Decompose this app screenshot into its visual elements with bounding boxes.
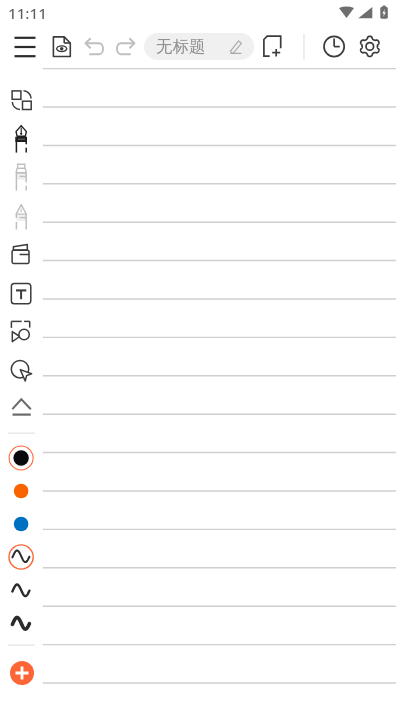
button[interactable]: Colour bbox=[5, 442, 37, 474]
button[interactable]: Settings bbox=[354, 30, 386, 62]
button[interactable]: Stroke width bbox=[5, 541, 37, 573]
button[interactable]: Marker bbox=[5, 161, 37, 193]
button[interactable]: Stroke width bbox=[5, 575, 37, 607]
button[interactable]: Lasso bbox=[5, 354, 37, 386]
button[interactable]: 无标题 bbox=[144, 33, 254, 60]
button[interactable]: Collapse bbox=[5, 392, 37, 424]
button[interactable]: Add bbox=[10, 661, 34, 685]
staticText: 11:11 bbox=[8, 3, 47, 24]
button[interactable]: Menu bbox=[11, 33, 39, 61]
button[interactable]: Preview bbox=[48, 33, 76, 61]
button[interactable]: History bbox=[318, 30, 350, 62]
button[interactable]: Pencil bbox=[5, 200, 37, 232]
button[interactable]: Text bbox=[5, 277, 37, 309]
button[interactable]: Colour bbox=[5, 475, 37, 507]
staticText: 无标题 bbox=[156, 36, 206, 57]
button[interactable]: Colour bbox=[5, 508, 37, 540]
button[interactable]: Undo bbox=[80, 30, 112, 62]
button[interactable]: Stroke width bbox=[5, 608, 37, 640]
button[interactable]: New page bbox=[258, 30, 290, 62]
button[interactable]: Eraser bbox=[5, 238, 37, 270]
button[interactable]: Pen bbox=[5, 123, 37, 155]
button[interactable]: Shapes bbox=[5, 315, 37, 347]
button[interactable]: Redo bbox=[108, 30, 140, 62]
button[interactable]: Select bbox=[5, 84, 37, 116]
